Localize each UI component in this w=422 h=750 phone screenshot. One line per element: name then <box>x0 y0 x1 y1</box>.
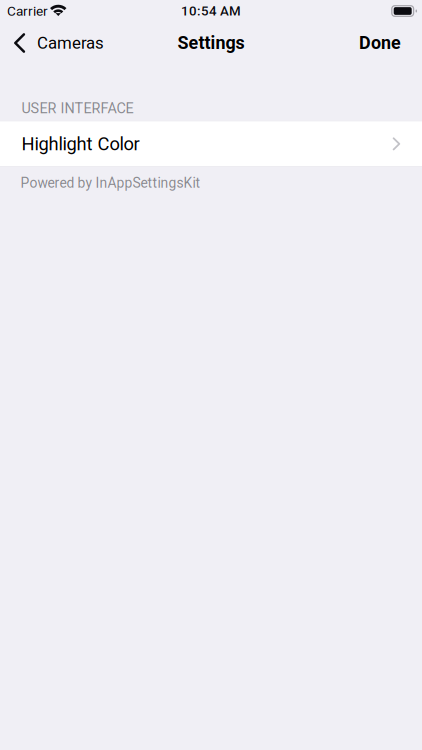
button[interactable]: Cameras <box>0 22 114 64</box>
staticText: Settings <box>177 32 244 53</box>
staticText: Powered by InAppSettingsKit <box>20 175 200 191</box>
staticText: 10:54 AM <box>181 3 241 19</box>
staticText: USER INTERFACE <box>21 100 133 117</box>
staticText: Highlight Color <box>21 133 139 155</box>
button[interactable]: Done <box>341 22 422 64</box>
staticText: Carrier <box>7 3 48 19</box>
staticText: Done <box>359 32 401 53</box>
staticText: Cameras <box>37 33 104 53</box>
button[interactable]: Highlight Color <box>0 121 422 166</box>
